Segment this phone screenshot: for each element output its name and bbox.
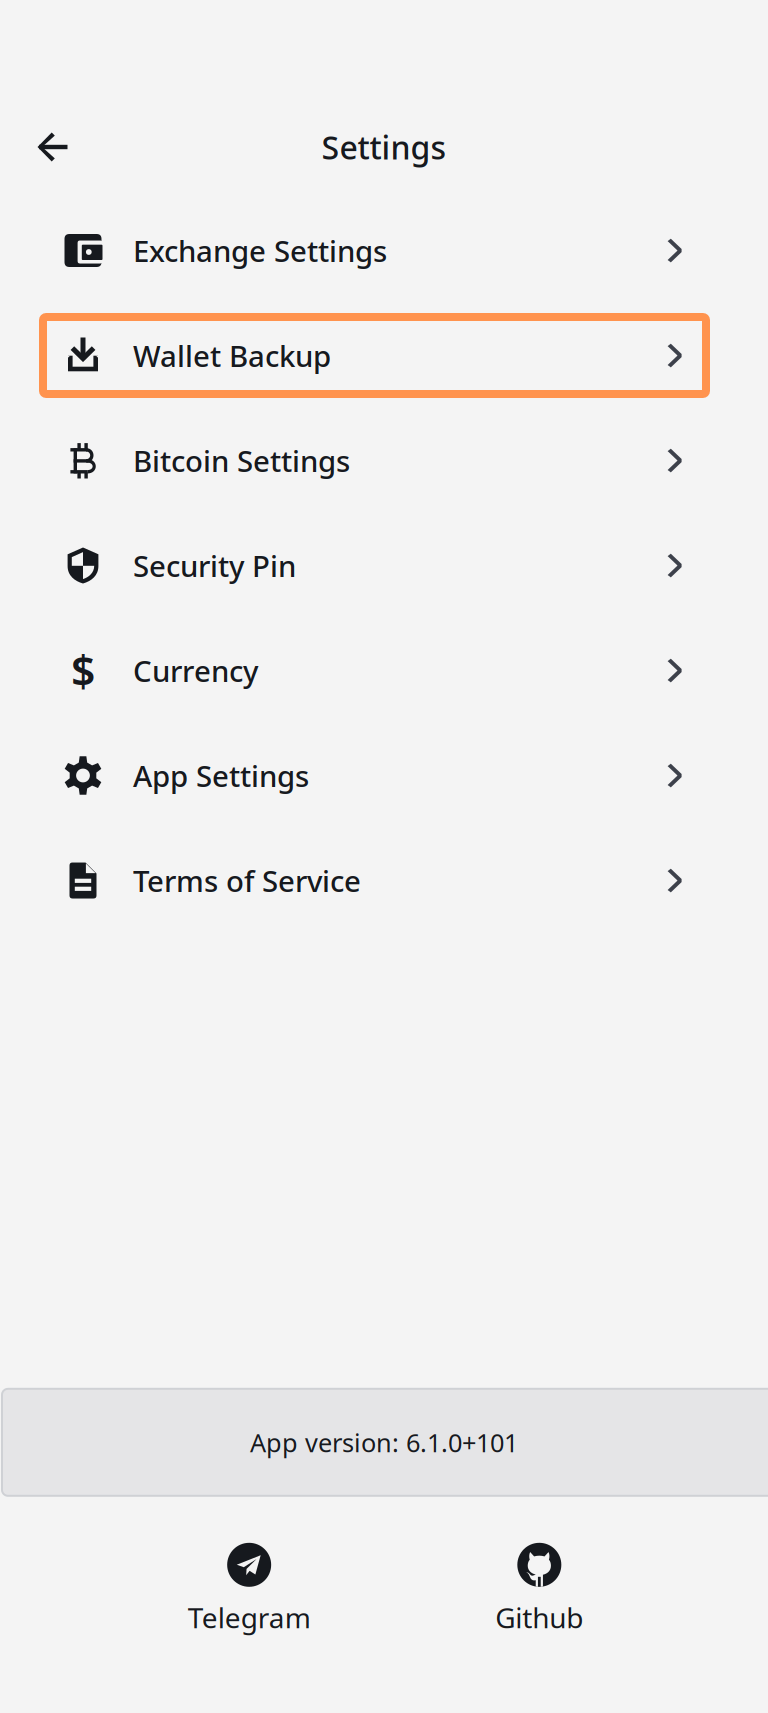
button[interactable]: App Settings: [0, 723, 768, 828]
staticText: Github: [495, 1599, 583, 1636]
button[interactable]: $: [0, 618, 768, 723]
button[interactable]: Terms of Service: [0, 828, 768, 933]
staticText: $: [71, 642, 95, 699]
button[interactable]: Github: [495, 1543, 583, 1636]
staticText: Telegram: [188, 1599, 311, 1636]
staticText: App Settings: [133, 756, 309, 795]
button[interactable]: Bitcoin Settings: [0, 408, 768, 513]
staticText: Terms of Service: [133, 861, 361, 900]
staticText: Currency: [133, 651, 258, 690]
staticText: Bitcoin Settings: [133, 441, 350, 480]
button[interactable]: Wallet Backup: [0, 303, 768, 408]
button[interactable]: Exchange Settings: [0, 198, 768, 303]
button[interactable]: Back: [24, 118, 82, 176]
button[interactable]: Telegram: [188, 1543, 311, 1636]
staticText: Exchange Settings: [133, 231, 387, 270]
staticText: App version: 6.1.0+101: [250, 1425, 518, 1459]
staticText: Settings: [321, 126, 446, 168]
staticText: Wallet Backup: [133, 336, 331, 375]
staticText: Security Pin: [133, 546, 296, 585]
button[interactable]: Security Pin: [0, 513, 768, 618]
